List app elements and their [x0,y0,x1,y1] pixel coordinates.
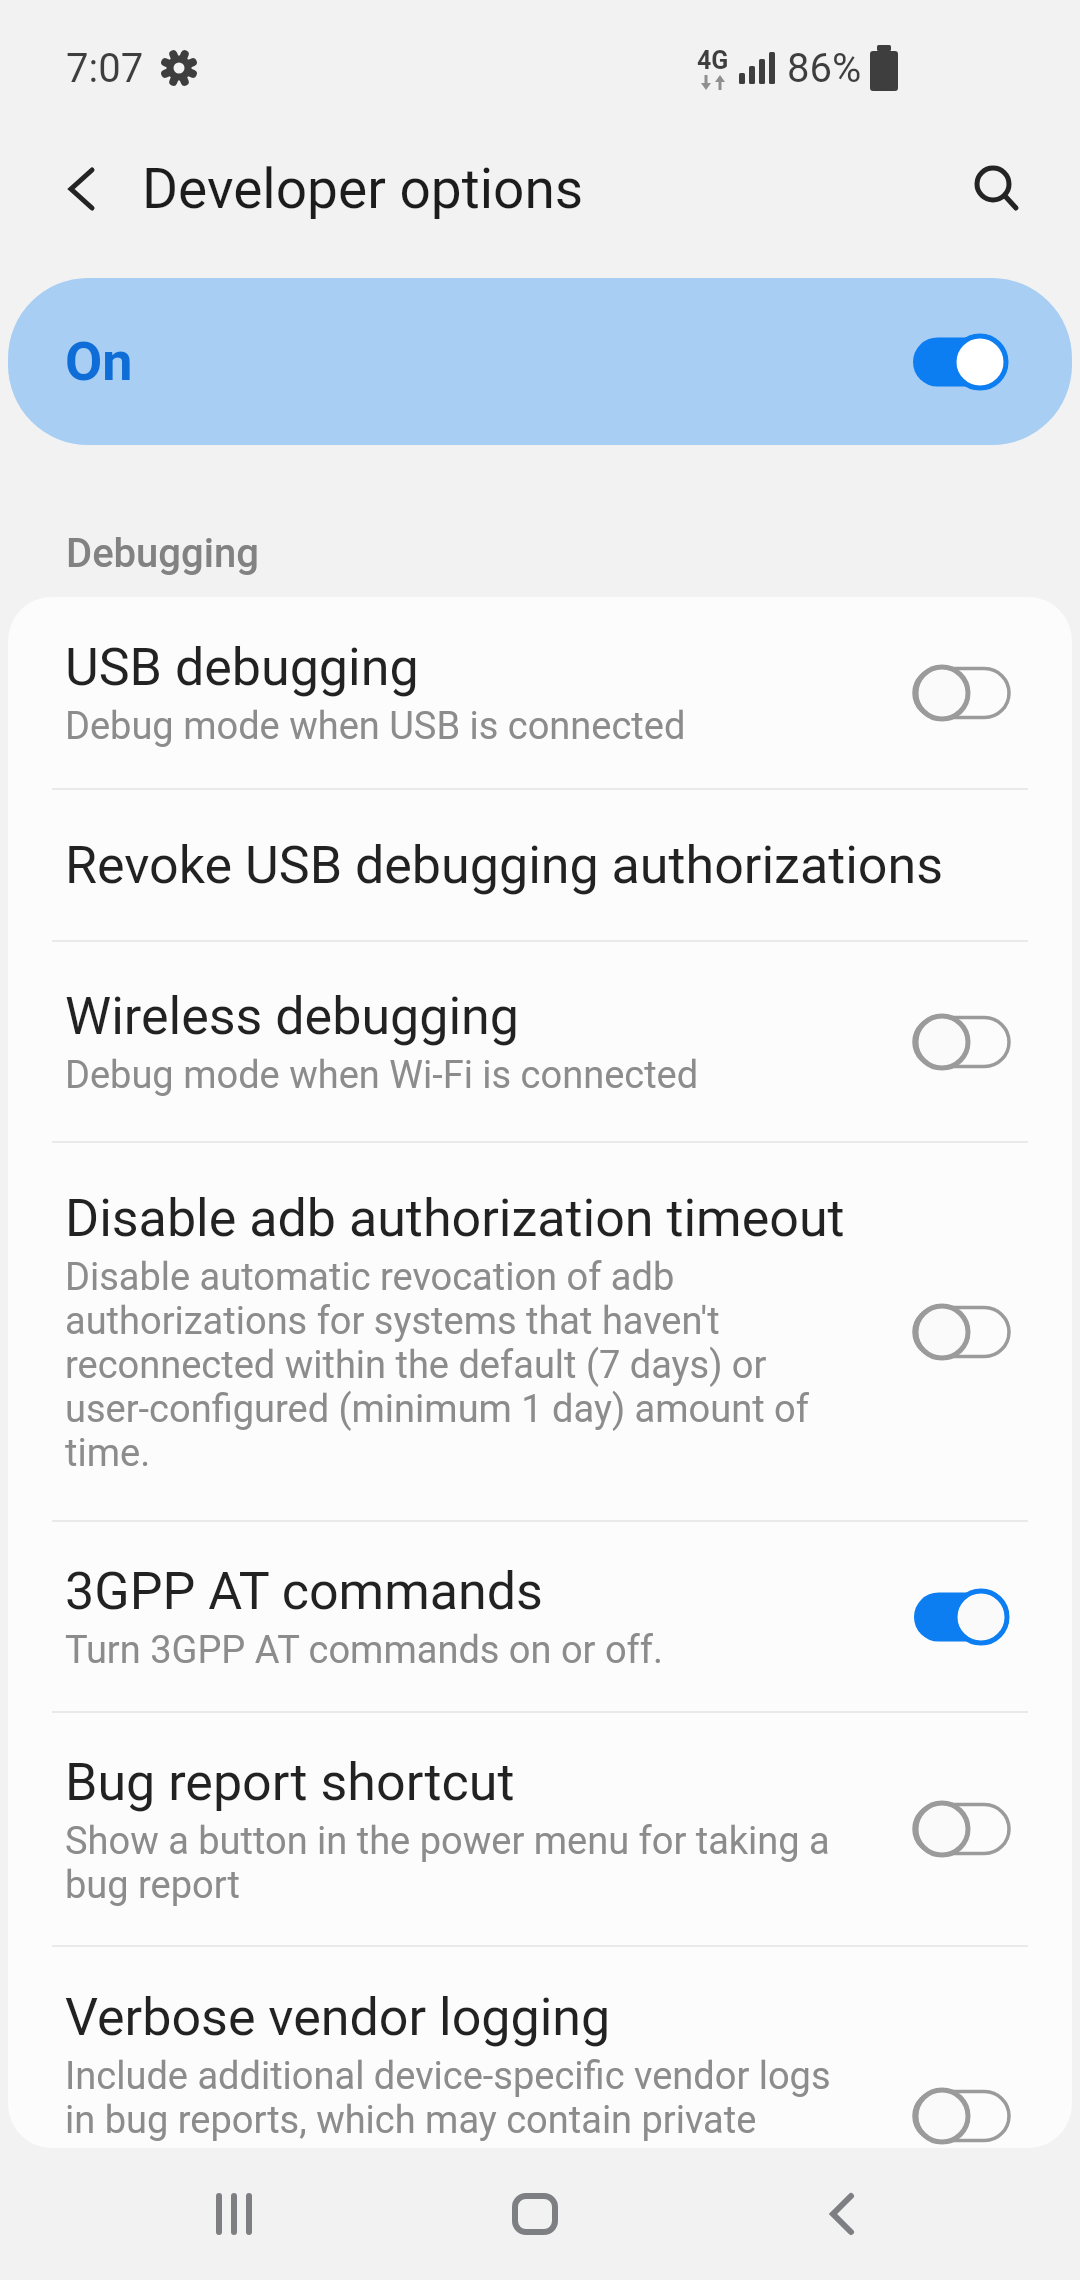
staticText: 4G [697,46,729,75]
staticText: Debug mode when USB is connected [65,704,686,749]
staticText: Disable automatic revocation of adb auth… [65,1255,809,1475]
staticText: Disable adb authorization timeout [65,1188,845,1249]
button[interactable] [974,166,1020,212]
staticText: Turn 3GPP AT commands on or off. [65,1628,664,1673]
staticText: 7:07 [66,45,144,92]
button[interactable]: On [8,278,1072,445]
staticText: Include additional device-specific vendo… [65,2054,831,2142]
staticText: Bug report shortcut [65,1752,515,1813]
staticText: Developer options [142,157,584,221]
button[interactable] [828,2193,854,2235]
button[interactable]: Verbose vendor logging [8,1947,1072,2148]
staticText: 3GPP AT commands [65,1561,543,1622]
staticText: USB debugging [65,637,419,698]
button[interactable]: 3GPP AT commands [8,1522,1072,1711]
button[interactable] [64,167,98,211]
button[interactable] [216,2193,252,2235]
staticText: 86% [787,45,862,92]
staticText: Wireless debugging [65,986,520,1047]
staticText: Show a button in the power menu for taki… [65,1819,830,1907]
staticText: Revoke USB debugging authorizations [65,835,944,896]
staticText: Debugging [66,530,259,577]
button[interactable]: Bug report shortcut [8,1713,1072,1945]
staticText: Debug mode when Wi-Fi is connected [65,1053,699,1098]
button[interactable]: Revoke USB debugging authorizations [8,790,1072,940]
staticText: Verbose vendor logging [65,1987,611,2048]
button[interactable] [512,2193,558,2235]
button[interactable]: Disable adb authorization timeout [8,1143,1072,1520]
button[interactable]: Wireless debugging [8,942,1072,1141]
button[interactable]: USB debugging [8,597,1072,788]
staticText: On [65,330,133,393]
